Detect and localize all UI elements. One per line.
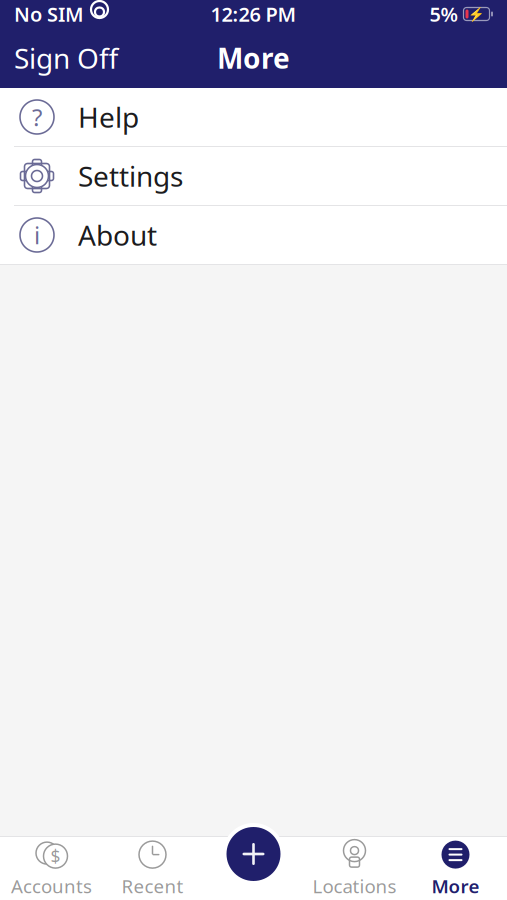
staticText: 5% <box>429 1 458 27</box>
staticText: More <box>431 874 479 898</box>
staticText: No SIM <box>14 1 84 27</box>
staticText: Settings <box>78 157 183 195</box>
staticText: Accounts <box>11 874 92 898</box>
button[interactable]: More <box>405 837 506 900</box>
staticText: Sign Off <box>14 39 118 77</box>
staticText: i <box>34 219 40 251</box>
staticText: About <box>78 216 157 254</box>
button[interactable]: Recent <box>102 837 203 900</box>
staticText: More <box>217 39 290 77</box>
button[interactable]: Sign Off <box>0 28 132 88</box>
staticText: $ <box>50 845 60 868</box>
button[interactable]: Locations <box>304 837 405 900</box>
button[interactable]: Settings <box>0 147 507 206</box>
staticText: Locations <box>312 874 396 898</box>
staticText: Help <box>78 98 139 136</box>
button[interactable]: i <box>0 206 507 265</box>
staticText: Recent <box>121 874 183 898</box>
button[interactable]: ? <box>0 88 507 147</box>
staticText: ⚡ <box>468 6 485 22</box>
button[interactable]: Add <box>218 819 288 889</box>
staticText: 12:26 PM <box>210 1 296 27</box>
staticText: ? <box>32 101 42 133</box>
button[interactable]: $ <box>1 837 102 900</box>
